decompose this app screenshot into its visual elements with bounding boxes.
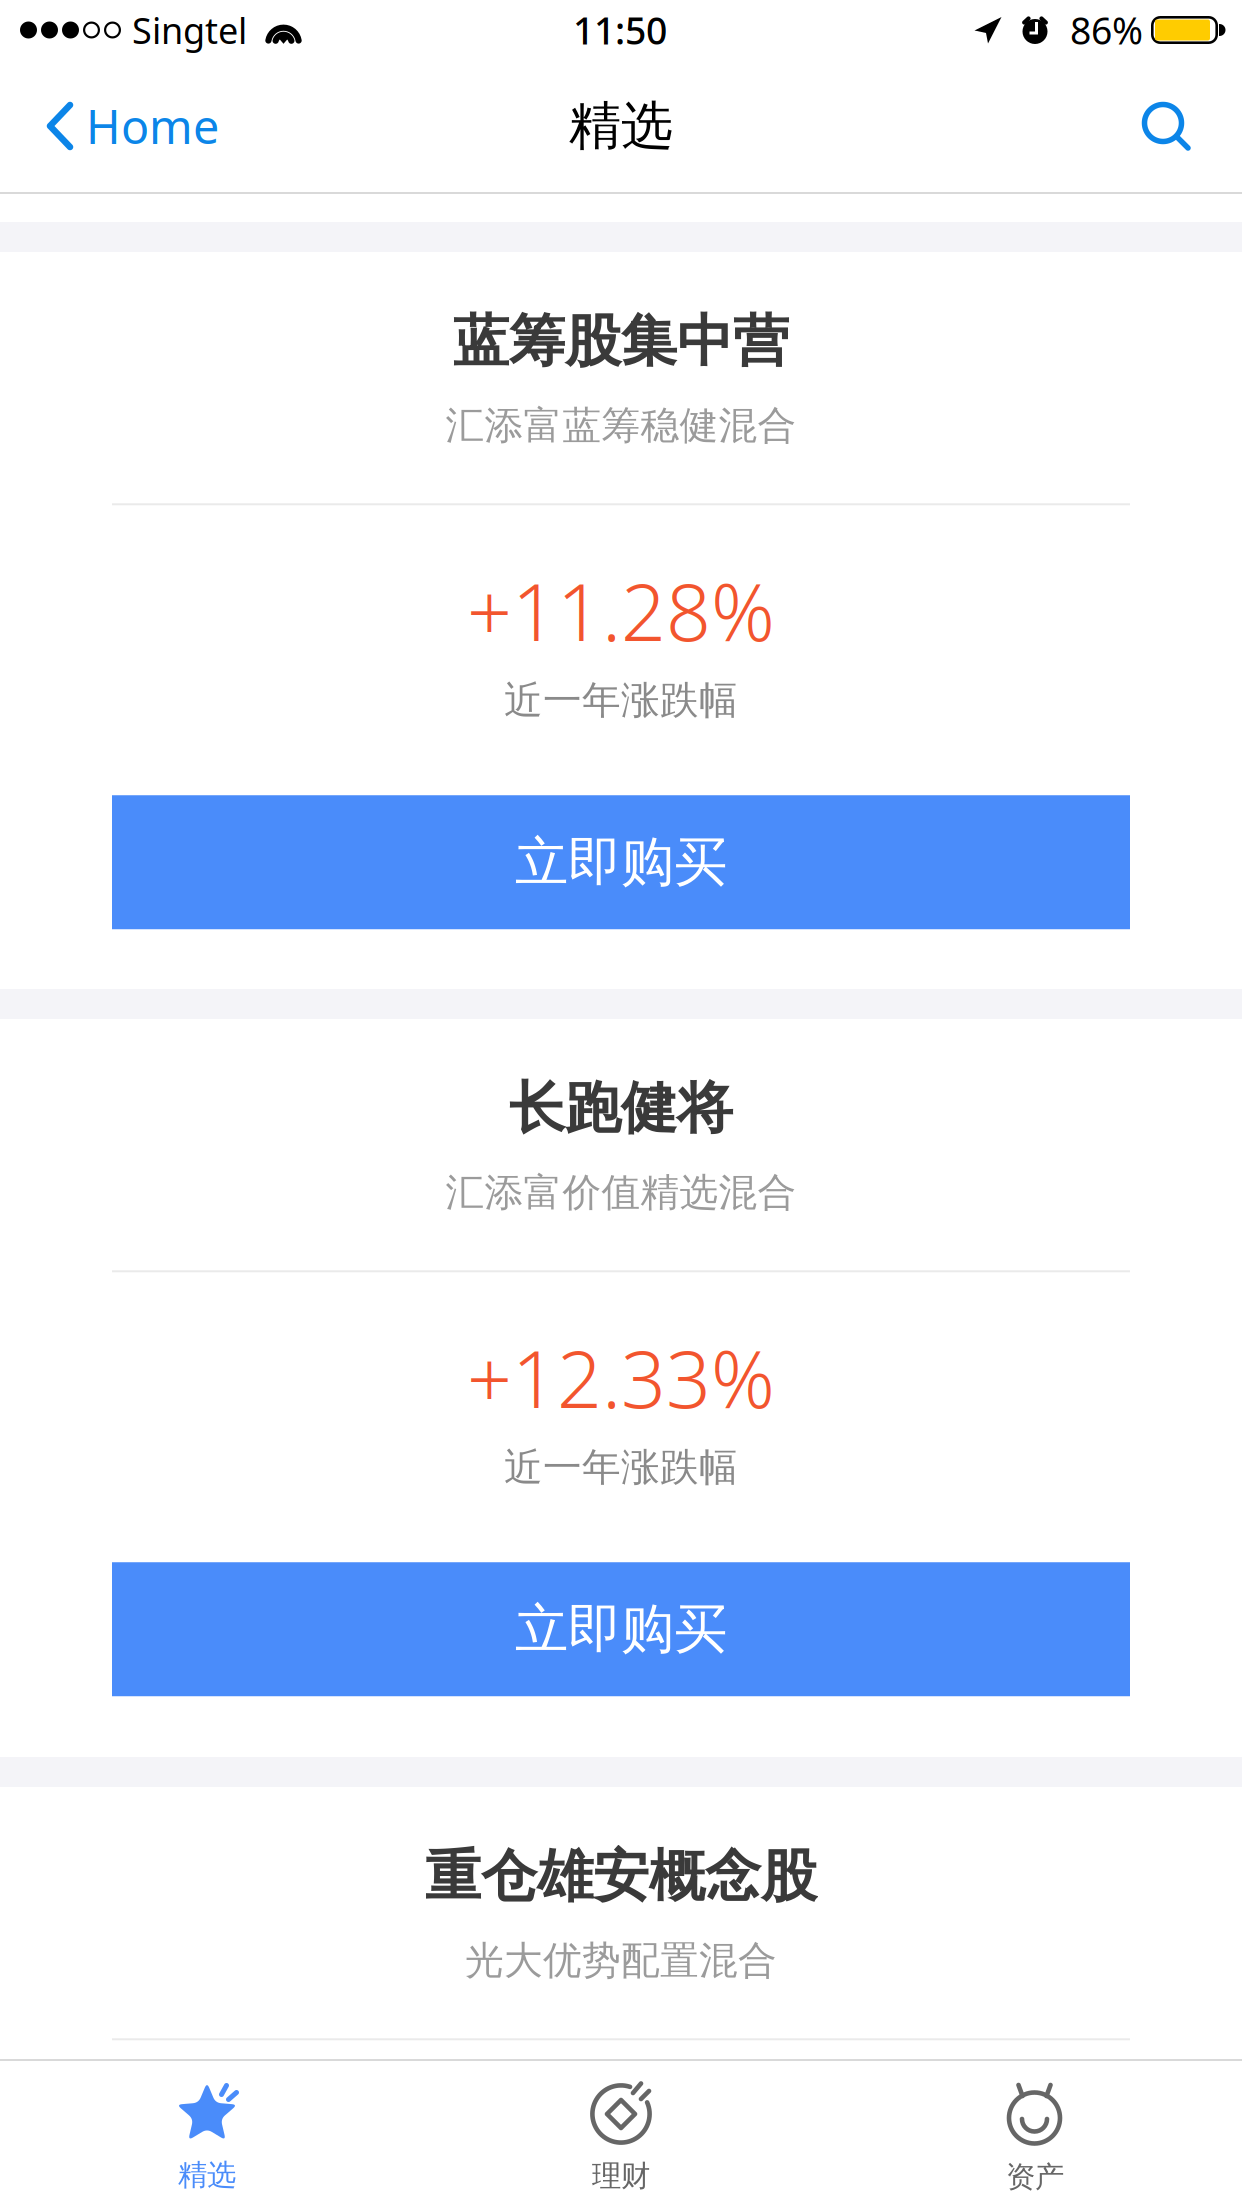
staticText: Singtel xyxy=(132,6,247,54)
staticText: 光大优势配置混合 xyxy=(465,1937,777,1984)
button[interactable]: 立即购买 xyxy=(112,1562,1130,1696)
staticText: 立即购买 xyxy=(515,1596,727,1662)
staticText: 蓝筹股集中营 xyxy=(453,307,789,376)
staticText: 重仓雄安概念股 xyxy=(425,1842,817,1911)
button[interactable]: 资产 xyxy=(828,2061,1242,2208)
staticText: 精选 xyxy=(569,94,673,158)
staticText: 11:50 xyxy=(573,5,667,55)
staticText: 汇添富蓝筹稳健混合 xyxy=(445,402,796,449)
staticText: 近一年涨跌幅 xyxy=(504,1444,738,1491)
button[interactable]: 精选 xyxy=(0,2061,414,2208)
staticText: Home xyxy=(86,95,219,157)
staticText: 理财 xyxy=(592,2158,650,2194)
button[interactable]: Search xyxy=(1114,60,1242,192)
staticText: 汇添富价值精选混合 xyxy=(445,1169,796,1216)
staticText: 资产 xyxy=(1006,2159,1064,2195)
staticText: +12.33% xyxy=(467,1325,775,1430)
staticText: 86% xyxy=(1070,5,1143,55)
staticText: +11.28% xyxy=(467,558,775,663)
staticText: 近一年涨跌幅 xyxy=(504,677,738,724)
button[interactable]: 立即购买 xyxy=(112,795,1130,929)
staticText: 立即购买 xyxy=(515,829,727,895)
staticText: 长跑健将 xyxy=(509,1074,733,1143)
button[interactable]: 理财 xyxy=(414,2061,828,2208)
button[interactable]: Home xyxy=(0,60,243,192)
staticText: 精选 xyxy=(178,2157,236,2193)
